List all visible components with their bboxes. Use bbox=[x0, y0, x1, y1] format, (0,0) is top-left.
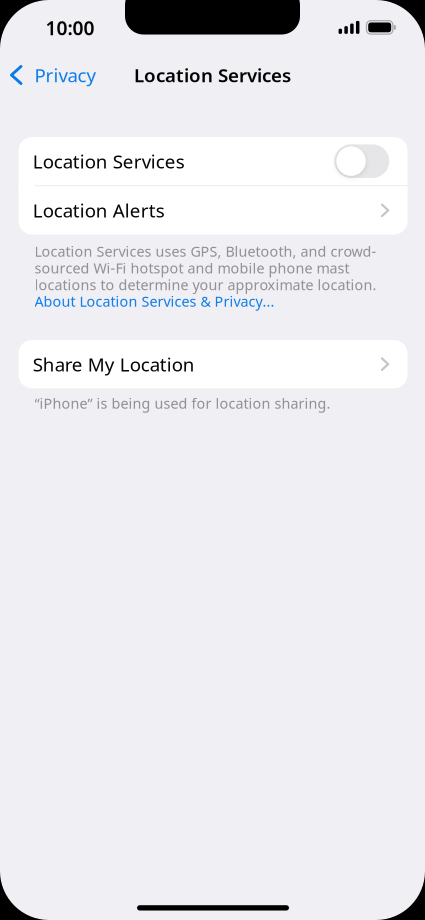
staticText: Privacy bbox=[34, 62, 96, 88]
staticText: 10:00 bbox=[45, 15, 94, 41]
staticText: Location Services bbox=[134, 62, 291, 88]
button[interactable]: Location Alerts bbox=[18, 186, 407, 234]
button[interactable]: About Location Services & Privacy... bbox=[34, 293, 379, 309]
button[interactable]: Location Services bbox=[334, 144, 389, 178]
staticText: Location Alerts bbox=[33, 198, 165, 223]
staticText: Location Services bbox=[33, 148, 185, 174]
staticText: Share My Location bbox=[33, 351, 195, 377]
staticText: About Location Services & Privacy... bbox=[34, 293, 274, 309]
button[interactable]: Privacy bbox=[0, 53, 108, 97]
button[interactable]: Share My Location bbox=[18, 340, 407, 388]
staticText: “iPhone” is being used for location shar… bbox=[34, 395, 330, 412]
staticText: Location Services uses GPS, Bluetooth, a… bbox=[34, 243, 376, 293]
